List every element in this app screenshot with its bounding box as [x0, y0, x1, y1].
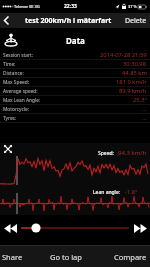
button[interactable]: Max Speed:	[0, 78, 150, 86]
staticText: 89.9 km/h	[119, 87, 147, 95]
staticText: Telenor SE 3G	[14, 4, 40, 9]
staticText: Speed:	[98, 150, 114, 157]
staticText: Data	[66, 35, 85, 46]
staticText: Time:	[3, 61, 16, 68]
staticText: Tyres:	[3, 115, 17, 122]
staticText: test 200km/h i mätarfart	[25, 16, 112, 26]
staticText: Share	[2, 252, 23, 262]
staticText: Delete	[125, 16, 147, 26]
button[interactable]: Go to lap	[48, 250, 84, 264]
staticText: 2014-07-28 21:59	[100, 51, 147, 59]
staticText: 44.85 km	[122, 69, 147, 77]
button[interactable]: Delete	[125, 16, 150, 26]
staticText: -1.8°	[125, 188, 138, 196]
staticText: Max Speed:	[3, 79, 30, 86]
button[interactable]: Time:	[0, 60, 150, 68]
button[interactable]: Distance:	[0, 69, 150, 77]
staticText: 37 %	[128, 4, 137, 9]
staticText: Average speed:	[3, 88, 38, 95]
button[interactable]: Average speed:	[0, 87, 150, 95]
staticText: Lean angle:	[93, 189, 121, 196]
staticText: 181.0 km/h	[116, 78, 147, 86]
staticText: Go to lap	[50, 252, 82, 262]
staticText: 30:30.98	[123, 60, 147, 68]
button[interactable]: Max Lean Angle:	[0, 96, 150, 104]
staticText: 22:33	[64, 3, 77, 10]
button[interactable]: Tyres:	[0, 114, 150, 122]
staticText: 25.3°	[133, 96, 147, 104]
button[interactable]	[0, 144, 13, 154]
staticText: Max Lean Angle:	[3, 97, 41, 104]
staticText: 94.3 km/h	[118, 149, 147, 157]
button[interactable]	[21, 222, 129, 234]
button[interactable]	[0, 13, 14, 28]
button[interactable]: Motorcycle:	[0, 105, 150, 113]
button[interactable]: Session start:	[0, 51, 150, 59]
staticText: Motorcycle:	[3, 106, 30, 113]
button[interactable]: Compare	[114, 250, 150, 264]
staticText: ...	[142, 114, 147, 122]
button[interactable]: Share	[0, 250, 23, 264]
button[interactable]	[4, 224, 17, 233]
button[interactable]	[134, 224, 147, 233]
staticText: Session start:	[3, 52, 34, 59]
staticText: ...	[142, 105, 147, 113]
staticText: Compare	[114, 252, 147, 262]
staticText: Distance:	[3, 70, 24, 77]
